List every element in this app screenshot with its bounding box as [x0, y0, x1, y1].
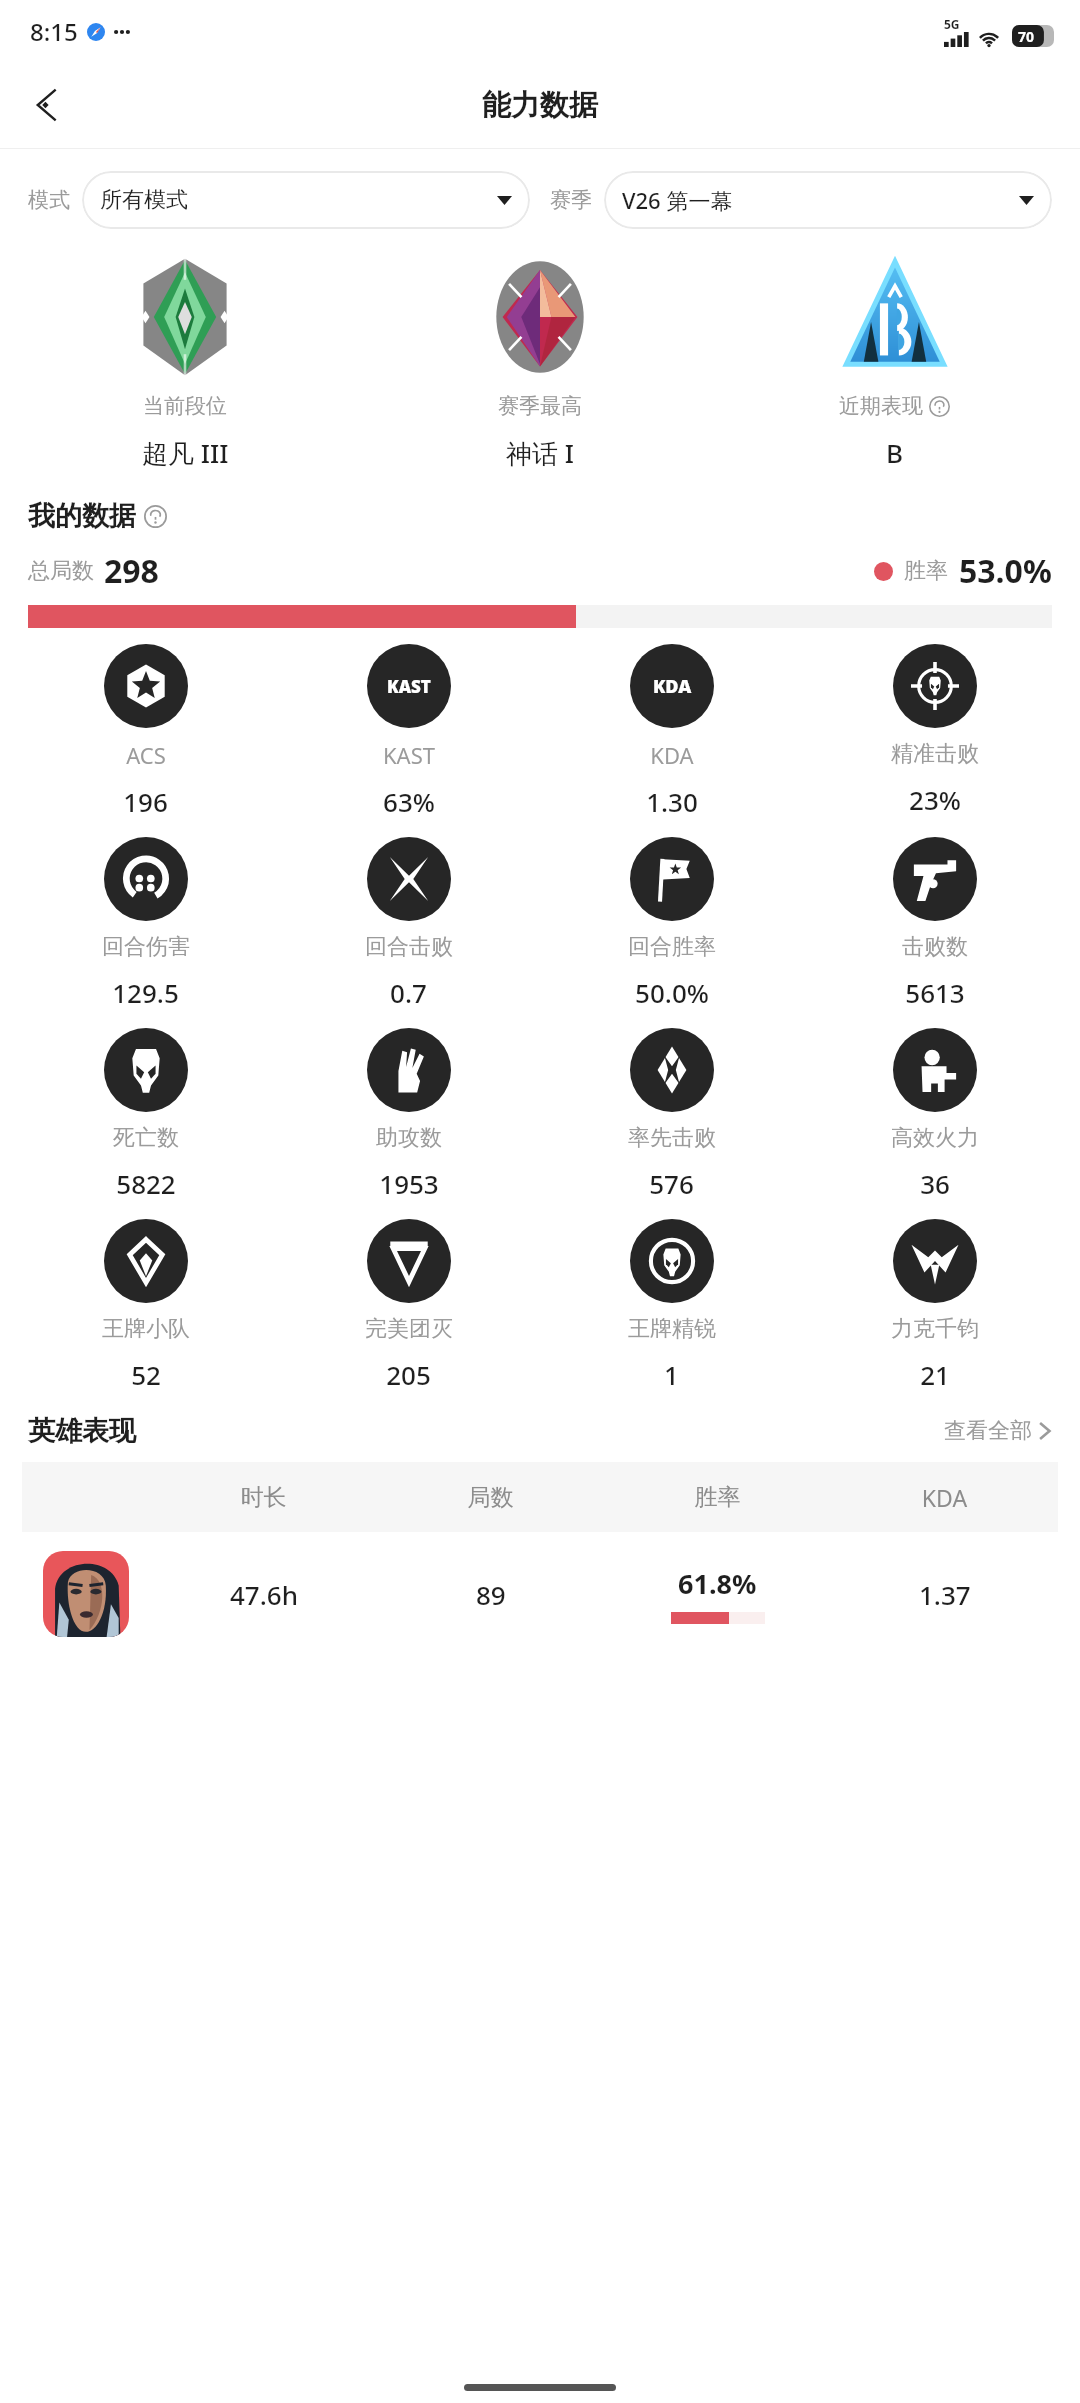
button[interactable]: 回合伤害: [14, 837, 277, 1010]
staticText: 超凡 III: [142, 435, 229, 471]
button[interactable]: 赛季最高: [362, 255, 717, 471]
button[interactable]: 回合胜率: [540, 837, 803, 1010]
staticText: 赛季: [550, 187, 592, 213]
button[interactable]: V26 第一幕: [604, 171, 1052, 229]
staticText: 21: [920, 1357, 950, 1392]
button[interactable]: 精准击败: [803, 644, 1066, 817]
staticText: 89: [476, 1577, 506, 1612]
staticText: 力克千钧: [891, 1315, 979, 1343]
staticText: 1.30: [646, 784, 698, 819]
staticText: 8:15: [30, 15, 78, 48]
button[interactable]: 当前段位: [8, 255, 362, 471]
staticText: 王牌精锐: [628, 1315, 716, 1343]
button[interactable]: 力克千钧: [803, 1219, 1066, 1392]
staticText: KDA: [653, 674, 692, 699]
staticText: 5613: [905, 975, 965, 1010]
staticText: B: [886, 435, 904, 470]
staticText: 高效火力: [891, 1124, 979, 1152]
staticText: 助攻数: [376, 1124, 442, 1152]
button[interactable]: 回合击败: [277, 837, 540, 1010]
staticText: 47.6h: [230, 1577, 298, 1612]
staticText: 回合伤害: [102, 933, 190, 961]
staticText: 298: [104, 549, 159, 593]
staticText: 53.0%: [959, 549, 1052, 593]
staticText: 胜率: [904, 557, 948, 585]
staticText: 击败数: [902, 933, 968, 961]
staticText: V26 第一幕: [622, 185, 733, 215]
button[interactable]: ACS: [14, 644, 277, 819]
staticText: 王牌小队: [102, 1315, 190, 1343]
staticText: 精准击败: [891, 740, 979, 768]
staticText: 5822: [116, 1166, 176, 1201]
button[interactable]: Back: [16, 73, 80, 137]
staticText: 576: [649, 1166, 694, 1201]
staticText: 1.37: [919, 1577, 971, 1612]
staticText: 61.8%: [678, 1565, 757, 1602]
staticText: 70: [1018, 27, 1035, 46]
staticText: 我的数据: [28, 499, 136, 533]
staticText: 死亡数: [113, 1124, 179, 1152]
button[interactable]: 完美团灭: [277, 1219, 540, 1392]
staticText: KAST: [383, 740, 435, 770]
staticText: 196: [123, 784, 168, 819]
staticText: 模式: [28, 187, 70, 213]
button[interactable]: 近期表现: [717, 255, 1072, 470]
button[interactable]: 死亡数: [14, 1028, 277, 1201]
staticText: 当前段位: [143, 393, 227, 419]
staticText: 回合击败: [365, 933, 453, 961]
staticText: 129.5: [112, 975, 179, 1010]
staticText: 所有模式: [100, 186, 188, 214]
staticText: 1953: [379, 1166, 439, 1201]
staticText: 50.0%: [635, 975, 709, 1010]
staticText: 完美团灭: [365, 1315, 453, 1343]
staticText: 205: [386, 1357, 431, 1392]
button[interactable]: KDA: [540, 644, 803, 819]
staticText: KAST: [387, 675, 431, 698]
staticText: 回合胜率: [628, 933, 716, 961]
staticText: 神话 I: [506, 435, 574, 471]
button[interactable]: 王牌精锐: [540, 1219, 803, 1392]
staticText: 36: [920, 1166, 950, 1201]
staticText: KDA: [831, 1482, 1058, 1513]
staticText: KDA: [650, 740, 694, 770]
staticText: 时长: [150, 1483, 377, 1512]
staticText: 23%: [909, 782, 961, 817]
staticText: 1: [664, 1357, 679, 1392]
staticText: 63%: [383, 784, 435, 819]
staticText: 查看全部: [944, 1417, 1032, 1445]
staticText: 英雄表现: [28, 1414, 136, 1448]
button[interactable]: 击败数: [803, 837, 1066, 1010]
button[interactable]: 高效火力: [803, 1028, 1066, 1201]
button[interactable]: 王牌小队: [14, 1219, 277, 1392]
button[interactable]: 47.6h: [22, 1532, 1058, 1656]
button[interactable]: 查看全部: [944, 1417, 1052, 1445]
staticText: 5G: [944, 16, 960, 32]
staticText: 率先击败: [628, 1124, 716, 1152]
staticText: 赛季最高: [498, 393, 582, 419]
staticText: 总局数: [28, 557, 94, 585]
button[interactable]: 所有模式: [82, 171, 530, 229]
staticText: ACS: [126, 740, 166, 770]
button[interactable]: KAST: [277, 644, 540, 819]
staticText: 能力数据: [482, 87, 598, 124]
button[interactable]: 助攻数: [277, 1028, 540, 1201]
button[interactable]: 率先击败: [540, 1028, 803, 1201]
staticText: 52: [131, 1357, 161, 1392]
staticText: 局数: [377, 1483, 604, 1512]
staticText: 近期表现: [839, 393, 923, 419]
staticText: 0.7: [390, 975, 427, 1010]
staticText: 胜率: [604, 1483, 831, 1512]
